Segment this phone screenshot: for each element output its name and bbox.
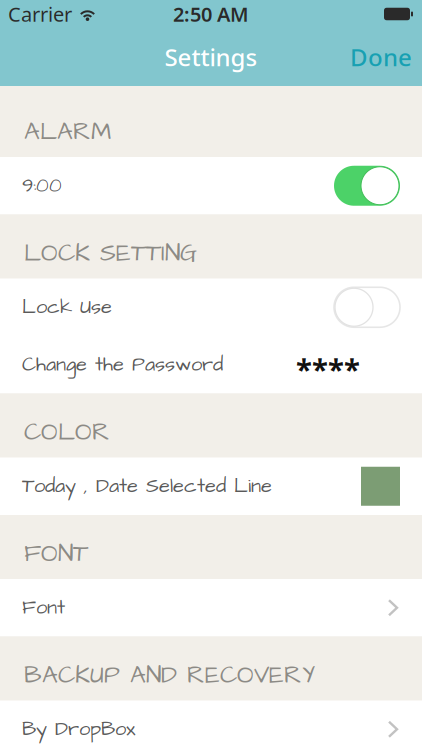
staticText: Settings [164,41,257,73]
staticText: BACKUP AND RECOVERY [24,658,315,692]
staticText: 9:00 [22,172,62,200]
button[interactable]: Done [336,35,422,79]
staticText: LOCK SETTING [24,236,197,270]
staticText: Carrier [8,1,72,27]
staticText: ALARM [24,115,111,149]
staticText: FONT [24,537,88,571]
staticText: Change the Password [22,351,223,379]
staticText: 2:50 AM [173,1,249,27]
staticText: COLOR [24,415,110,449]
staticText: Done [350,41,412,73]
staticText: By DropBox [22,715,135,743]
staticText: Today , Date Selected Line [22,472,272,500]
staticText: Font [22,594,65,622]
staticText: **** [296,349,360,388]
staticText: Lock Use [22,293,112,321]
